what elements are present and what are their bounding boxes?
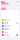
staticText: Albums <box>4 28 9 30</box>
staticText: Music <box>1 0 9 11</box>
button[interactable]: Songs <box>1 33 19 36</box>
staticText: Artists <box>4 31 8 33</box>
staticText: Radio <box>4 22 8 24</box>
staticText: Songs <box>4 34 9 36</box>
staticText: Search <box>4 25 10 27</box>
staticText: Library <box>4 19 10 21</box>
button[interactable]: Search <box>1 24 19 27</box>
staticText: 9:41 <box>1 1 4 2</box>
button[interactable]: Albums <box>1 27 19 30</box>
button[interactable]: Library <box>1 18 19 21</box>
button[interactable]: Artists <box>1 30 19 33</box>
staticText: ▮▮ <box>17 1 19 2</box>
button[interactable]: Radio <box>1 21 19 24</box>
